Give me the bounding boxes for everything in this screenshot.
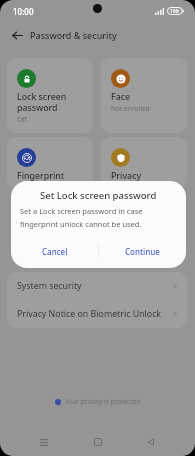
staticText: 100 bbox=[170, 8, 179, 15]
staticText: Set a Lock screen password in case finge… bbox=[20, 206, 177, 229]
button[interactable]: Fingerprint bbox=[7, 137, 93, 189]
staticText: Not enrolled bbox=[111, 104, 150, 113]
button[interactable]: Home bbox=[88, 432, 108, 452]
button[interactable]: Lock screen password bbox=[7, 58, 93, 133]
staticText: Lock screen password bbox=[17, 91, 67, 114]
button[interactable]: Back bbox=[8, 26, 26, 44]
button[interactable]: Face bbox=[101, 58, 187, 133]
staticText: Fingerprint bbox=[17, 170, 65, 182]
staticText: Set Lock screen password bbox=[40, 189, 157, 202]
button[interactable]: Privacy bbox=[101, 137, 187, 188]
staticText: 10:00 bbox=[13, 6, 34, 17]
staticText: Continue bbox=[125, 246, 160, 257]
button[interactable]: Cancel bbox=[11, 241, 98, 262]
button[interactable]: Continue bbox=[99, 241, 186, 262]
staticText: Cancel bbox=[42, 246, 68, 257]
staticText: Privacy Notice on Biometric Unlock bbox=[17, 308, 172, 320]
staticText: Password & security bbox=[30, 29, 117, 41]
staticText: Off bbox=[17, 115, 27, 124]
staticText: Your privacy is protected bbox=[65, 397, 141, 406]
button[interactable]: System security bbox=[7, 272, 187, 300]
staticText: Face bbox=[111, 91, 131, 103]
button[interactable]: Back bbox=[141, 432, 161, 452]
staticText: Privacy bbox=[111, 170, 142, 182]
button[interactable]: Privacy Notice on Biometric Unlock bbox=[7, 300, 187, 328]
button[interactable]: Recent apps bbox=[34, 432, 54, 452]
staticText: System security bbox=[17, 280, 172, 292]
